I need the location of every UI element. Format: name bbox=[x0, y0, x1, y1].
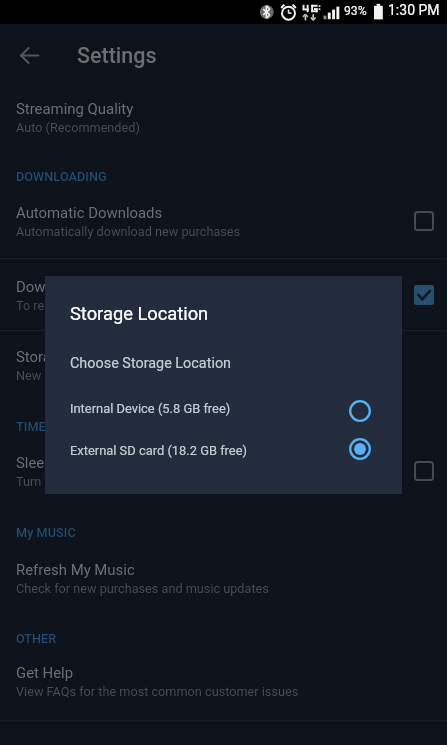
button[interactable]: Streaming Quality bbox=[0, 86, 447, 140]
staticText: New downloads saved to internal device bbox=[16, 368, 243, 383]
button[interactable]: Back bbox=[13, 39, 46, 72]
staticText: Get Help bbox=[16, 664, 74, 681]
staticText: Auto (Recommended) bbox=[16, 120, 140, 135]
button[interactable]: Internal Device (5.8 GB free) bbox=[45, 381, 402, 421]
staticText: Automatically download new purchases bbox=[16, 224, 241, 239]
button[interactable]: Enabled bbox=[414, 285, 434, 305]
staticText: To receive downloads over Wi-Fi only bbox=[16, 298, 224, 313]
button[interactable]: Disabled bbox=[414, 461, 434, 481]
button: Storage Location bbox=[45, 276, 402, 494]
button[interactable]: Download over Wi-Fi only bbox=[0, 264, 447, 318]
staticText: Check for new purchases and music update… bbox=[16, 581, 269, 596]
staticText: Choose Storage Location bbox=[70, 355, 232, 372]
staticText: 1:30 PM bbox=[388, 2, 440, 18]
button[interactable]: Automatic Downloads bbox=[0, 190, 447, 244]
button: My MUSIC bbox=[16, 525, 76, 540]
button: DOWNLOADING bbox=[16, 169, 107, 184]
staticText: Storage Location bbox=[16, 348, 129, 365]
button[interactable]: Sleep Timer bbox=[0, 440, 447, 494]
staticText: Turn the music off after a set time bbox=[16, 474, 208, 489]
staticText: View FAQs for the most common customer i… bbox=[16, 684, 299, 699]
staticText: Refresh My Music bbox=[16, 561, 135, 578]
button[interactable]: External SD card (18.2 GB free) bbox=[45, 423, 402, 463]
button[interactable]: Get Help bbox=[0, 650, 447, 704]
staticText: Download over Wi-Fi only bbox=[16, 278, 182, 295]
staticText: Streaming Quality bbox=[16, 100, 134, 117]
button: OTHER bbox=[16, 631, 57, 646]
staticText: Automatic Downloads bbox=[16, 204, 163, 221]
staticText: Settings bbox=[77, 43, 157, 68]
staticText: 93% bbox=[344, 4, 367, 18]
staticText: Sleep Timer bbox=[16, 454, 95, 471]
button: TIMER bbox=[16, 419, 54, 434]
button[interactable]: Storage Location bbox=[0, 334, 447, 388]
staticText: Storage Location bbox=[70, 303, 209, 324]
button[interactable]: Refresh My Music bbox=[0, 547, 447, 601]
staticText: Internal Device (5.8 GB free) bbox=[70, 401, 231, 416]
staticText: External SD card (18.2 GB free) bbox=[70, 443, 248, 458]
button[interactable]: Disabled bbox=[414, 211, 434, 231]
